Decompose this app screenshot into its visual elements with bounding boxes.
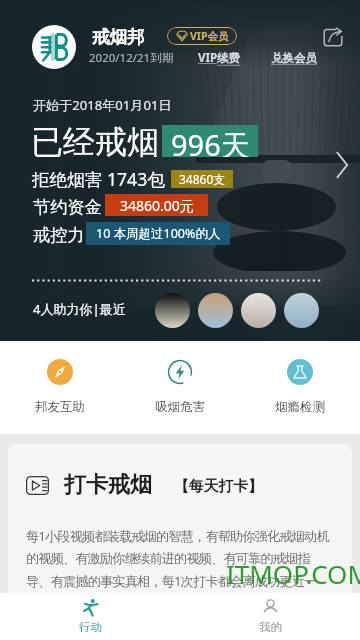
button[interactable]: 兑换会员 — [271, 51, 317, 65]
staticText: 邦友互助 — [35, 399, 85, 415]
staticText: ITMOP.COM — [226, 556, 360, 591]
button[interactable]: 我的 — [225, 593, 315, 640]
staticText: 4人助力你|最近 — [33, 300, 126, 318]
staticText: 节约资金 — [33, 196, 102, 218]
button[interactable]: Supporter 4 — [284, 293, 319, 328]
button[interactable]: VIP续费 — [198, 50, 241, 66]
staticText: 996天 — [171, 125, 250, 157]
button[interactable]: 邦友互助 — [0, 341, 120, 434]
staticText: 10 本周超过100%的人 — [96, 225, 221, 242]
staticText: 开始于2018年01月01日 — [33, 96, 172, 114]
button[interactable]: 吸烟危害 — [120, 341, 240, 434]
staticText: 已经戒烟 — [31, 122, 159, 162]
button[interactable]: Supporter 3 — [241, 293, 276, 328]
staticText: 2020/12/21到期 — [89, 50, 174, 66]
button[interactable]: 行动 — [45, 593, 135, 640]
staticText: 行动 — [79, 620, 102, 634]
staticText: 拒绝烟害 1743包 — [32, 167, 165, 191]
staticText: 【每天打卡】 — [174, 477, 263, 496]
button[interactable]: Supporter 1 — [155, 293, 190, 328]
button[interactable]: Profile — [32, 25, 76, 69]
staticText: 戒控力 — [33, 224, 85, 246]
staticText: 34860支 — [179, 171, 226, 187]
staticText: 每1小段视频都装载戒烟的智慧，有帮助你强化戒烟动机的视频、有激励你继续前进的视频… — [26, 527, 334, 590]
button[interactable]: VIP会员 — [167, 27, 237, 45]
staticText: 打卡戒烟 — [64, 471, 152, 499]
staticText: 吸烟危害 — [155, 399, 205, 415]
button[interactable]: 打卡戒烟 — [8, 444, 352, 593]
staticText: VIP续费 — [198, 50, 241, 66]
button[interactable]: 烟瘾检测 — [240, 341, 360, 434]
button[interactable]: Share — [321, 25, 345, 49]
staticText: VIP会员 — [190, 29, 229, 43]
staticText: 34860.00元 — [120, 196, 194, 215]
button[interactable]: Supporter 2 — [198, 293, 233, 328]
staticText: 烟瘾检测 — [275, 399, 325, 415]
staticText: 兑换会员 — [271, 51, 317, 65]
staticText: 戒烟邦 — [92, 26, 145, 48]
staticText: 我的 — [259, 620, 282, 634]
